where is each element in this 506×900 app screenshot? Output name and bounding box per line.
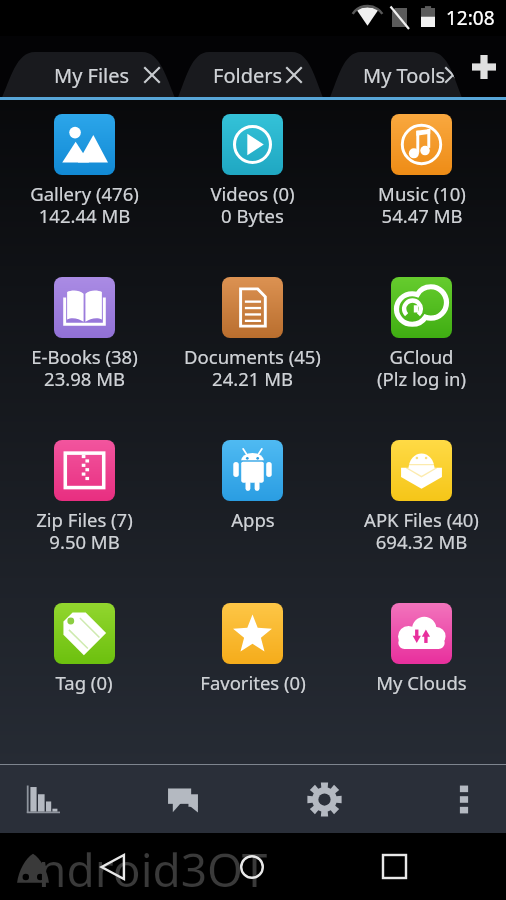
button[interactable]: E-Books (38) 23.98 MB: [0, 277, 168, 440]
button[interactable]: GCloud (Plz log in): [337, 277, 506, 440]
button[interactable]: Videos (0) 0 Bytes: [168, 114, 337, 277]
button[interactable]: Home: [227, 833, 277, 900]
button[interactable]: Tag (0): [0, 603, 168, 764]
staticText: Zip Files (7) 9.50 MB: [36, 507, 133, 555]
button[interactable]: More options: [429, 765, 499, 833]
button[interactable]: Messages: [136, 765, 230, 833]
staticText: Documents (45) 24.21 MB: [184, 344, 321, 392]
button[interactable]: Folders: [177, 52, 324, 100]
button[interactable]: Statistics: [0, 765, 93, 833]
button[interactable]: My Tools: [329, 52, 463, 100]
button[interactable]: Gallery (476) 142.44 MB: [0, 114, 168, 277]
staticText: GCloud (Plz log in): [377, 344, 466, 392]
staticText: My Clouds: [376, 670, 467, 695]
staticText: Tag (0): [55, 670, 113, 695]
staticText: Music (10) 54.47 MB: [378, 181, 466, 229]
button[interactable]: Recent apps: [369, 833, 419, 900]
button[interactable]: Favorites (0): [168, 603, 337, 764]
staticText: Gallery (476) 142.44 MB: [30, 181, 139, 229]
button[interactable]: Back: [88, 833, 138, 900]
button[interactable]: New tab: [463, 52, 506, 100]
button[interactable]: Settings: [276, 765, 372, 833]
staticText: APK Files (40) 694.32 MB: [364, 507, 479, 555]
button[interactable]: My Clouds: [337, 603, 506, 764]
button[interactable]: Music (10) 54.47 MB: [337, 114, 506, 277]
button[interactable]: My Files: [1, 52, 176, 100]
button[interactable]: Apps: [168, 440, 337, 603]
staticText: Videos (0) 0 Bytes: [210, 181, 295, 229]
button[interactable]: Zip Files (7) 9.50 MB: [0, 440, 168, 603]
staticText: E-Books (38) 23.98 MB: [31, 344, 138, 392]
button[interactable]: Documents (45) 24.21 MB: [168, 277, 337, 440]
staticText: My Tools: [363, 62, 446, 89]
staticText: My Files: [54, 62, 130, 89]
staticText: ndroid3OT: [38, 838, 268, 900]
button[interactable]: APK Files (40) 694.32 MB: [337, 440, 506, 603]
staticText: 12:08: [446, 5, 495, 31]
staticText: Apps: [231, 507, 275, 532]
staticText: Folders: [213, 62, 283, 89]
staticText: Favorites (0): [200, 670, 306, 695]
